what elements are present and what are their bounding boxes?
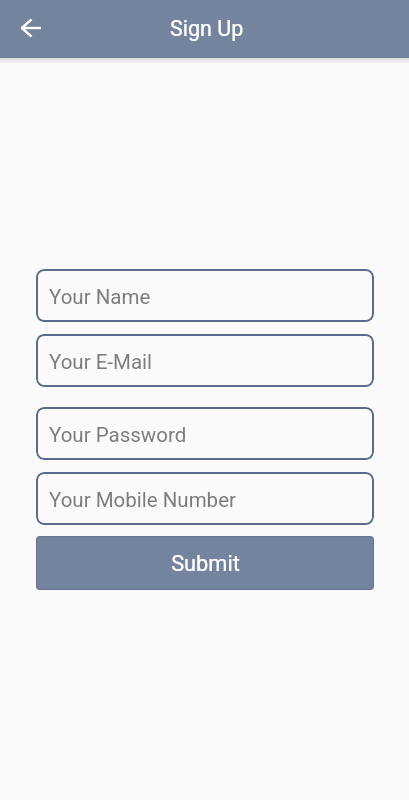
staticText: Submit [171,551,240,577]
button[interactable]: Your Mobile Number [36,472,374,525]
staticText: Your E-Mail [49,350,153,374]
button[interactable]: Your Name [36,269,374,322]
staticText: Sign Up [170,16,244,41]
button[interactable]: Submit [36,536,374,590]
button[interactable]: Your Password [36,407,374,460]
staticText: Your Mobile Number [49,488,236,512]
staticText: Your Name [49,285,151,309]
staticText: Your Password [49,423,187,447]
button[interactable]: Your E-Mail [36,334,374,387]
button[interactable]: Back [12,9,52,49]
